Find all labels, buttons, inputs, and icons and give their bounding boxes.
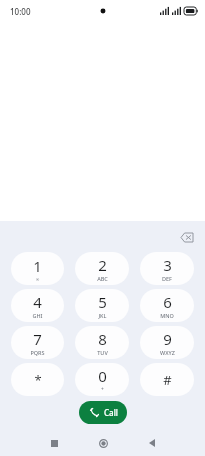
staticText: ∞ <box>35 276 40 282</box>
staticText: # <box>163 371 172 389</box>
staticText: 0 <box>98 366 107 386</box>
button[interactable]: 9 <box>140 326 194 359</box>
staticText: Call <box>104 407 118 418</box>
staticText: + <box>101 386 104 393</box>
button[interactable]: 8 <box>75 326 129 359</box>
staticText: 2 <box>98 255 107 275</box>
staticText: 8 <box>98 329 107 349</box>
staticText: JKL <box>98 312 107 319</box>
button[interactable]: * <box>11 363 64 396</box>
button[interactable]: Call <box>79 401 127 424</box>
button[interactable]: # <box>140 363 194 396</box>
button[interactable]: 6 <box>140 289 194 322</box>
staticText: 3 <box>163 255 172 275</box>
staticText: TUV <box>97 349 108 356</box>
staticText: 1 <box>33 256 42 276</box>
button[interactable]: 5 <box>75 289 129 322</box>
button[interactable]: 2 <box>75 252 129 285</box>
staticText: MNO <box>160 312 174 319</box>
button[interactable]: Home <box>92 432 114 454</box>
staticText: ABC <box>97 275 108 282</box>
button[interactable]: Back <box>141 432 163 454</box>
staticText: * <box>34 371 42 389</box>
staticText: 5 <box>98 292 107 312</box>
button[interactable]: 4 <box>11 289 64 322</box>
button[interactable]: 1 <box>11 252 64 285</box>
staticText: 7 <box>33 329 42 349</box>
staticText: PQRS <box>30 349 45 356</box>
button[interactable]: 0 <box>75 363 129 396</box>
button[interactable]: 7 <box>11 326 64 359</box>
staticText: 9 <box>163 329 172 349</box>
button[interactable]: Backspace <box>177 227 197 247</box>
staticText: 10:00 <box>10 6 31 17</box>
staticText: 4 <box>33 292 42 312</box>
staticText: WXYZ <box>160 349 175 356</box>
button[interactable]: Recents <box>43 432 65 454</box>
staticText: 6 <box>163 292 172 312</box>
staticText: DEF <box>162 275 172 282</box>
button[interactable]: 3 <box>140 252 194 285</box>
staticText: GHI <box>32 312 43 319</box>
